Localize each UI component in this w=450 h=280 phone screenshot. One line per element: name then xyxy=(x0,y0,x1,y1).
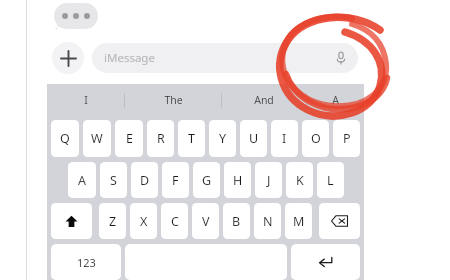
button[interactable]: E xyxy=(115,120,143,157)
staticText: Z xyxy=(109,213,117,230)
button[interactable]: Z xyxy=(99,203,126,239)
button[interactable]: N xyxy=(254,203,281,239)
button[interactable]: I xyxy=(47,84,124,116)
button[interactable]: W xyxy=(83,120,111,157)
button[interactable]: S xyxy=(100,162,127,198)
staticText: J xyxy=(267,172,271,189)
button[interactable]: X xyxy=(130,203,157,239)
button[interactable]: K xyxy=(286,162,313,198)
staticText: G xyxy=(202,172,212,189)
button[interactable]: Shift xyxy=(51,203,92,239)
button[interactable]: Backspace xyxy=(319,203,360,239)
button[interactable]: F xyxy=(162,162,189,198)
staticText: B xyxy=(232,213,241,230)
button[interactable]: V xyxy=(192,203,219,239)
staticText: P xyxy=(343,130,351,147)
button[interactable]: H xyxy=(224,162,251,198)
button[interactable]: T xyxy=(178,120,205,157)
button[interactable]: 123 xyxy=(51,244,121,280)
button[interactable]: Q xyxy=(51,120,79,157)
staticText: And xyxy=(254,93,274,107)
staticText: V xyxy=(202,213,210,230)
button[interactable]: A xyxy=(307,84,364,116)
staticText: E xyxy=(126,130,133,147)
staticText: Q xyxy=(60,130,70,147)
staticText: R xyxy=(157,130,165,147)
button[interactable]: Y xyxy=(209,120,236,157)
button[interactable]: And xyxy=(222,84,306,116)
staticText: A xyxy=(332,93,339,107)
button[interactable]: B xyxy=(223,203,250,239)
button[interactable]: L xyxy=(317,162,344,198)
button[interactable]: I xyxy=(271,120,298,157)
staticText: H xyxy=(233,172,243,189)
staticText: L xyxy=(327,172,334,189)
staticText: N xyxy=(263,213,273,230)
staticText: iMessage xyxy=(104,50,155,66)
button[interactable]: P xyxy=(333,120,360,157)
button[interactable]: iMessage xyxy=(92,43,358,73)
staticText: U xyxy=(249,130,259,147)
button[interactable]: Dictate xyxy=(330,47,352,69)
staticText: T xyxy=(188,130,195,147)
button[interactable]: D xyxy=(131,162,158,198)
staticText: X xyxy=(140,213,148,230)
staticText: S xyxy=(110,172,117,189)
staticText: C xyxy=(171,213,179,230)
staticText: O xyxy=(311,130,321,147)
staticText: A xyxy=(78,172,86,189)
staticText: W xyxy=(91,130,103,147)
staticText: Y xyxy=(219,130,227,147)
button[interactable]: R xyxy=(147,120,174,157)
staticText: I xyxy=(84,93,88,107)
staticText: 123 xyxy=(77,255,96,270)
button[interactable]: Add attachment xyxy=(52,42,84,74)
button[interactable]: U xyxy=(240,120,267,157)
button[interactable]: O xyxy=(302,120,329,157)
staticText: The xyxy=(164,93,183,107)
button[interactable]: The xyxy=(125,84,221,116)
button[interactable]: Return xyxy=(291,244,360,280)
button[interactable]: G xyxy=(193,162,220,198)
staticText: I xyxy=(282,130,287,147)
button[interactable]: C xyxy=(161,203,188,239)
staticText: F xyxy=(172,172,179,189)
button[interactable]: A xyxy=(68,162,96,198)
button[interactable]: M xyxy=(285,203,312,239)
button[interactable]: J xyxy=(255,162,282,198)
staticText: D xyxy=(140,172,150,189)
staticText: K xyxy=(296,172,304,189)
staticText: M xyxy=(293,213,305,230)
